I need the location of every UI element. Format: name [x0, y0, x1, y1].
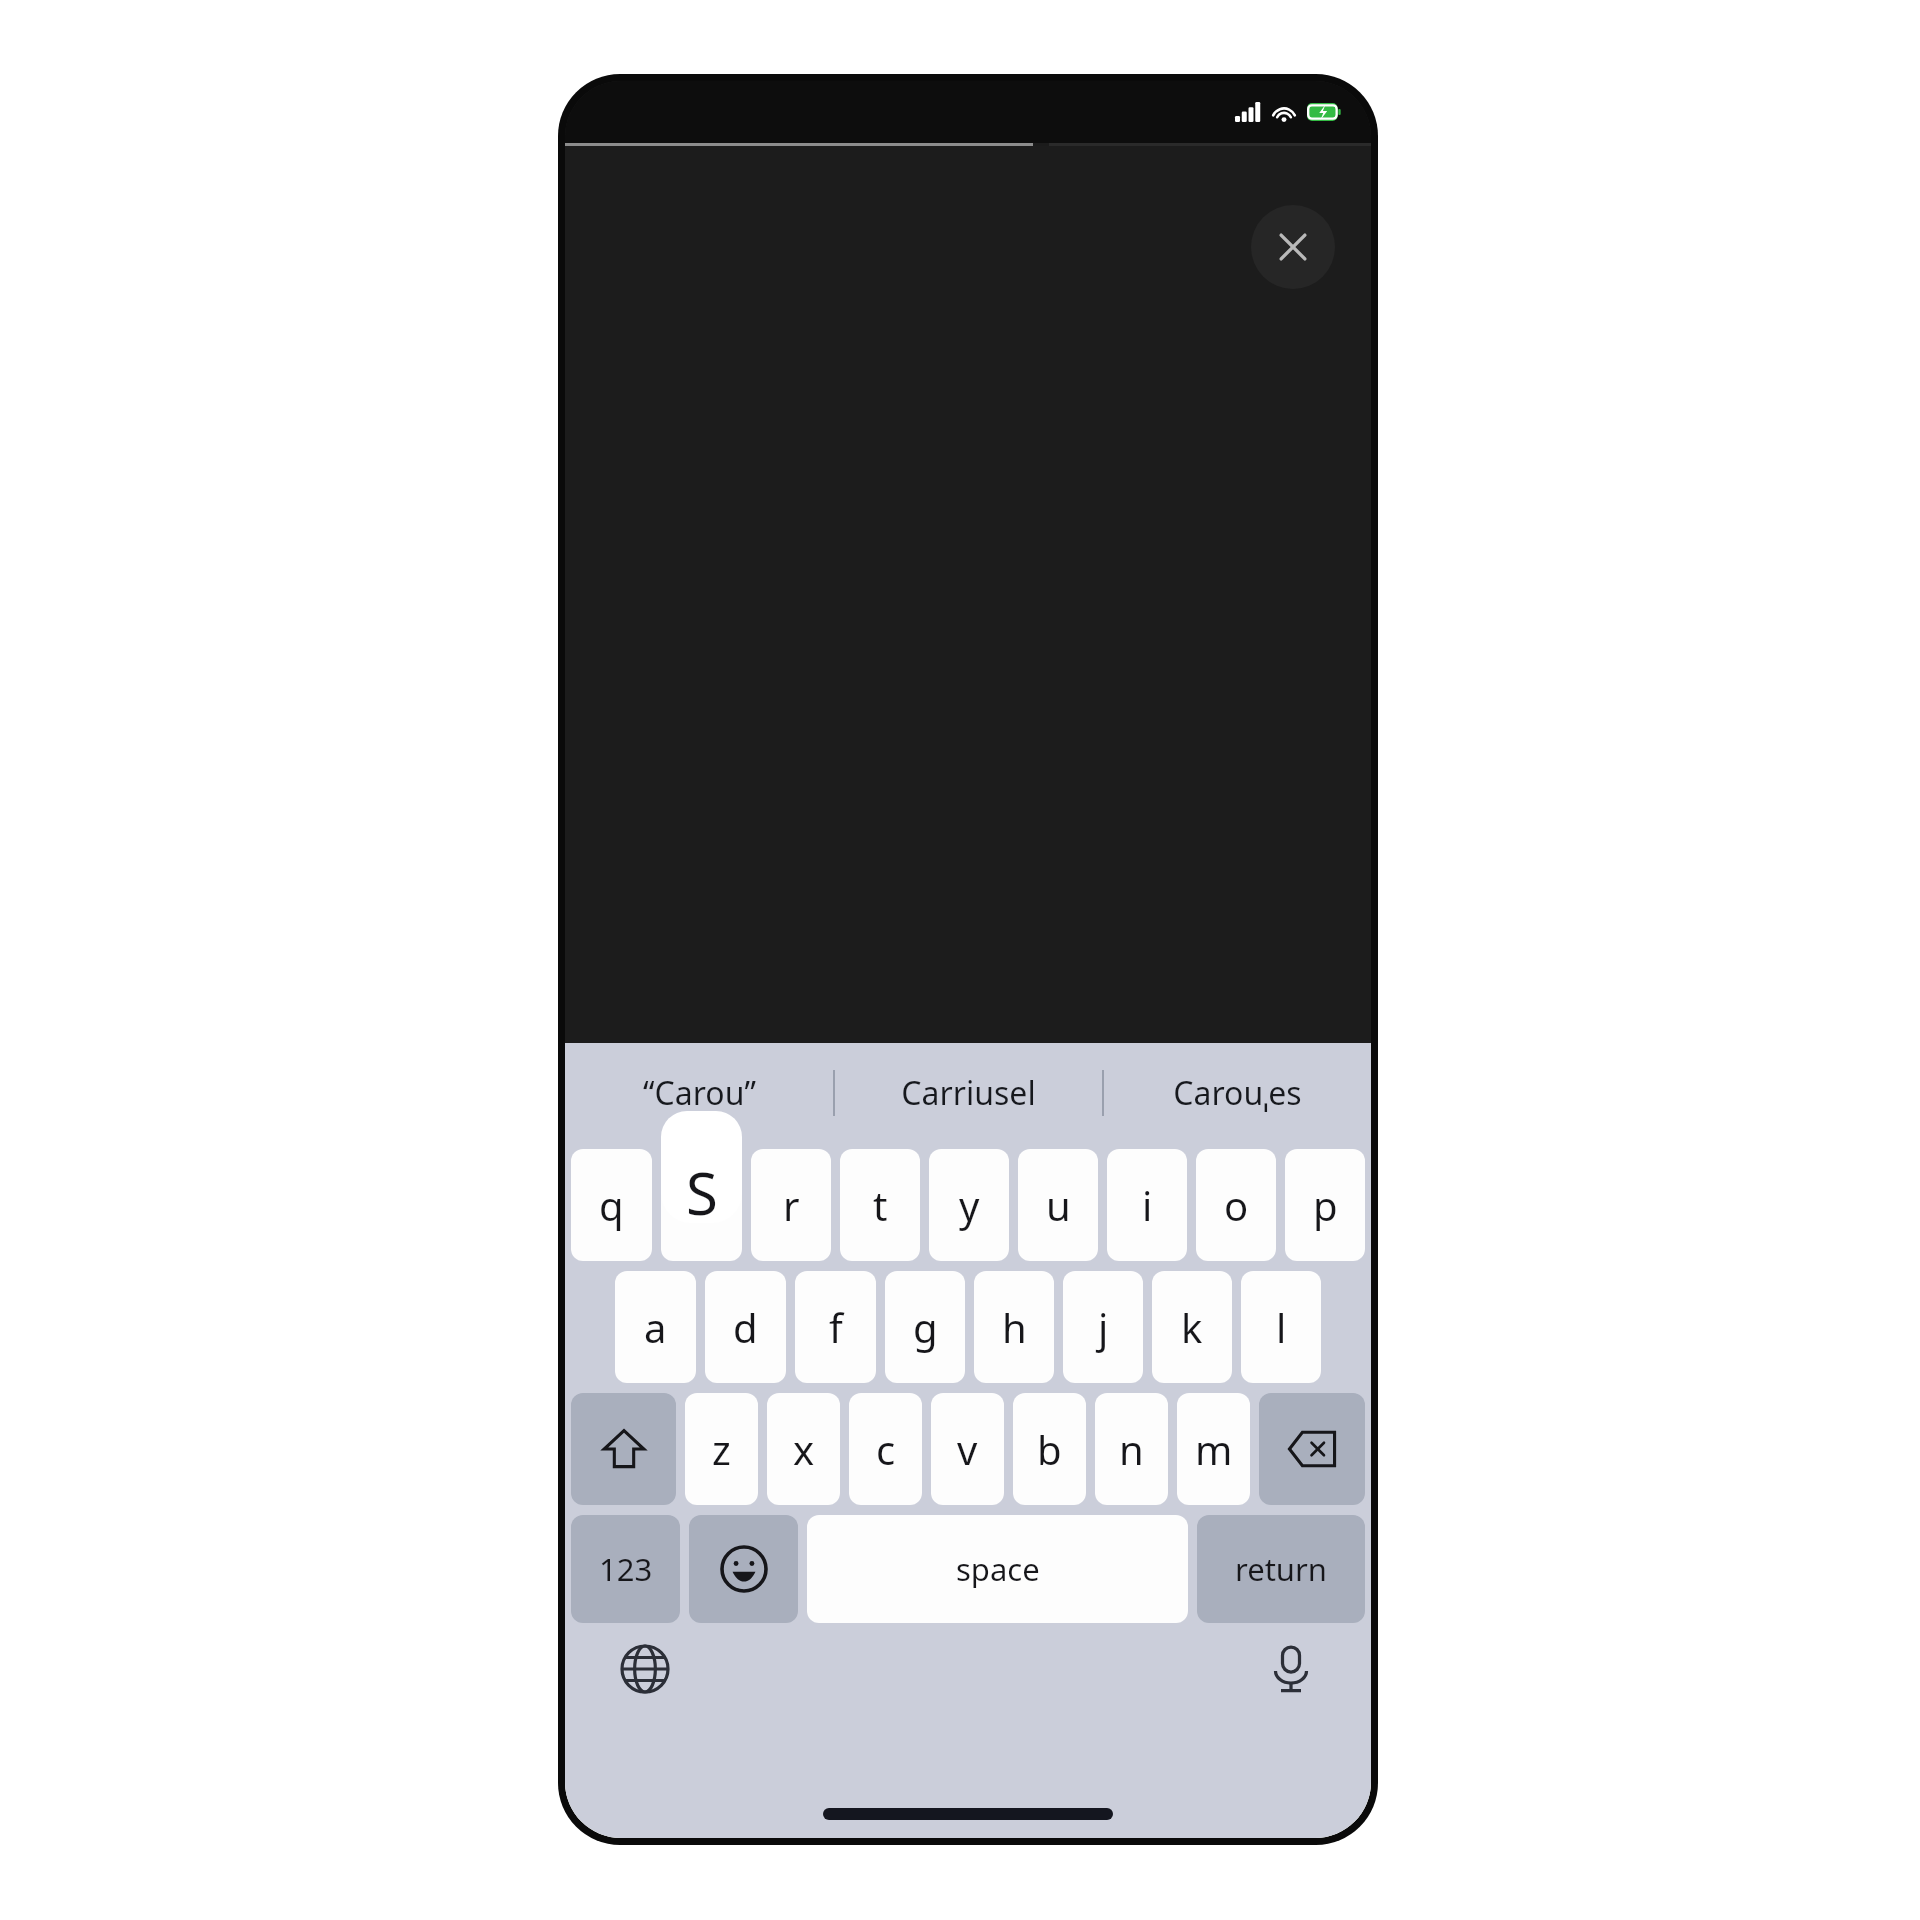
- button[interactable]: i key: [1107, 1149, 1187, 1261]
- staticText: “Carou”: [643, 1071, 756, 1115]
- button[interactable]: Carriusel: [835, 1043, 1102, 1143]
- button[interactable]: o key: [1196, 1149, 1276, 1261]
- button[interactable]: k key: [1152, 1271, 1232, 1383]
- button[interactable]: v key: [931, 1393, 1004, 1505]
- button[interactable]: Backspace: [1259, 1393, 1365, 1505]
- button[interactable]: h key: [974, 1271, 1054, 1383]
- button[interactable]: r key: [751, 1149, 831, 1261]
- button[interactable]: Done: [1252, 1673, 1347, 1739]
- staticText: t: [873, 1178, 888, 1232]
- staticText: Edit caption: [599, 1590, 786, 1635]
- button[interactable]: p key: [1285, 1149, 1365, 1261]
- button[interactable]: c key: [849, 1393, 922, 1505]
- button[interactable]: x key: [767, 1393, 840, 1505]
- staticText: g: [913, 1300, 938, 1354]
- staticText: r: [783, 1178, 800, 1232]
- button[interactable]: f key: [795, 1271, 876, 1383]
- staticText: y: [959, 1178, 980, 1232]
- button[interactable]: t key: [840, 1149, 920, 1261]
- button[interactable]: “Carou”: [565, 1043, 833, 1143]
- staticText: Ornate wrought iron Carous: [621, 1685, 1032, 1727]
- button[interactable]: b key: [1013, 1393, 1086, 1505]
- staticText: x: [793, 1422, 815, 1476]
- staticText: space: [956, 1548, 1040, 1590]
- staticText: z: [712, 1422, 731, 1476]
- button[interactable]: d key: [705, 1271, 786, 1383]
- button[interactable]: g key: [885, 1271, 965, 1383]
- staticText: c: [876, 1422, 896, 1476]
- staticText: o: [1224, 1178, 1249, 1232]
- staticText: j: [1098, 1300, 1109, 1354]
- staticText: h: [1002, 1300, 1027, 1354]
- staticText: n: [1119, 1422, 1144, 1476]
- staticText: f: [829, 1300, 843, 1354]
- button[interactable]: u key: [1018, 1149, 1098, 1261]
- staticText: Done: [1260, 1685, 1339, 1727]
- button[interactable]: Change keyboard language: [613, 1637, 677, 1701]
- button[interactable]: Emoji: [689, 1515, 798, 1623]
- staticText: Carouˌes: [1173, 1071, 1302, 1115]
- staticText: b: [1037, 1422, 1062, 1476]
- button[interactable]: l key: [1241, 1271, 1321, 1383]
- button[interactable]: Ornate wrought iron Carous: [621, 1660, 1206, 1752]
- button[interactable]: m key: [1177, 1393, 1250, 1505]
- staticText: v: [957, 1422, 978, 1476]
- button[interactable]: q key: [571, 1149, 652, 1261]
- staticText: 123: [599, 1548, 653, 1590]
- button[interactable]: space: [807, 1515, 1188, 1623]
- button[interactable]: [661, 1149, 742, 1261]
- staticText: q: [599, 1178, 624, 1232]
- button[interactable]: Shift: [571, 1393, 676, 1505]
- staticText: m: [1195, 1422, 1233, 1476]
- button[interactable]: a key: [615, 1271, 696, 1383]
- staticText: u: [1046, 1178, 1071, 1232]
- button[interactable]: y key: [929, 1149, 1009, 1261]
- button[interactable]: z key: [685, 1393, 758, 1505]
- button[interactable]: j key: [1063, 1271, 1143, 1383]
- staticText: d: [733, 1300, 758, 1354]
- button[interactable]: Carouˌes: [1104, 1043, 1371, 1143]
- staticText: a: [644, 1300, 667, 1354]
- staticText: Carriusel: [901, 1071, 1036, 1115]
- staticText: i: [1142, 1178, 1153, 1232]
- staticText: S: [686, 1153, 718, 1223]
- button[interactable]: s key: [661, 1111, 742, 1223]
- staticText: l: [1276, 1300, 1287, 1354]
- button[interactable]: Voice input: [1259, 1637, 1323, 1701]
- button[interactable]: 123: [571, 1515, 680, 1623]
- button[interactable]: Close dialog: [1285, 1586, 1337, 1638]
- staticText: p: [1313, 1178, 1338, 1232]
- staticText: return: [1235, 1548, 1327, 1590]
- button[interactable]: Close: [1251, 205, 1335, 289]
- button[interactable]: n key: [1095, 1393, 1168, 1505]
- button[interactable]: return: [1197, 1515, 1365, 1623]
- staticText: k: [1181, 1300, 1203, 1354]
